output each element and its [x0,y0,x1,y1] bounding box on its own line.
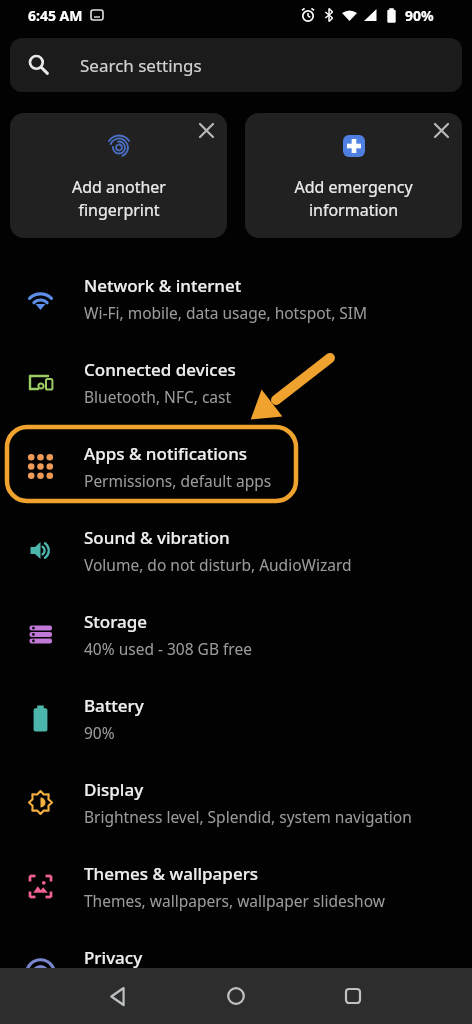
button[interactable]: Network & internet [0,256,472,340]
button[interactable] [329,972,377,1020]
staticText: Add emergency information [294,176,413,221]
staticText: Privacy [84,946,143,969]
button[interactable] [426,115,456,145]
staticText: Add another fingerprint [72,176,166,221]
staticText: 6:45 AM [28,6,83,25]
staticText: Battery [84,694,144,717]
staticText: 90% [405,6,434,25]
staticText: Brightness level, Splendid, system navig… [84,806,412,827]
staticText: 40% used - 308 GB free [84,638,252,659]
staticText: Volume, do not disturb, AudioWizard [84,554,352,575]
button[interactable] [212,972,260,1020]
staticText: Network & internet [84,274,242,297]
staticText: 90% [84,722,115,743]
staticText: Apps & notifications [84,442,248,465]
button[interactable]: Privacy [0,928,472,1012]
staticText: Themes & wallpapers [84,862,259,885]
staticText: Sound & vibration [84,526,230,549]
staticText: Storage [84,610,148,633]
staticText: Wi-Fi, mobile, data usage, hotspot, SIM [84,302,368,323]
staticText: Themes, wallpapers, wallpaper slideshow [84,890,385,911]
button[interactable]: Storage [0,592,472,676]
button[interactable]: Add another fingerprint [10,113,227,238]
button[interactable]: Connected devices [0,340,472,424]
button[interactable]: Apps & notifications [0,424,472,508]
staticText: Permissions, default apps [84,470,272,491]
button[interactable]: Sound & vibration [0,508,472,592]
button[interactable] [191,115,221,145]
button[interactable]: Battery [0,676,472,760]
staticText: Permissions, account activity, personal … [84,974,402,995]
button[interactable]: Themes & wallpapers [0,844,472,928]
staticText: Display [84,778,144,801]
button[interactable] [94,972,142,1020]
button[interactable]: Search settings [10,38,462,92]
staticText: Connected devices [84,358,236,381]
button[interactable]: Add emergency information [245,113,462,238]
staticText: Bluetooth, NFC, cast [84,386,232,407]
staticText: Search settings [80,54,202,77]
button[interactable]: Display [0,760,472,844]
